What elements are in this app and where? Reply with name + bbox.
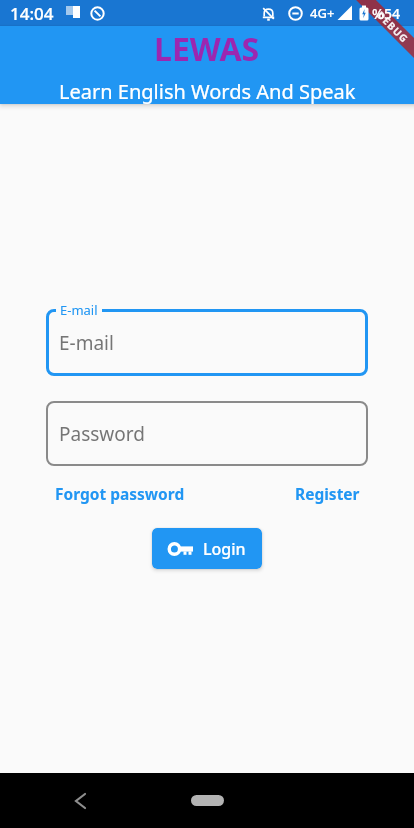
button[interactable]: Login [152, 528, 262, 569]
staticText: LEWAS [154, 27, 260, 71]
button[interactable]: Password [46, 401, 368, 466]
staticText: DEBUG [374, 8, 412, 46]
staticText: E-mail [59, 330, 114, 356]
staticText: E-mail [60, 301, 98, 319]
staticText: Learn English Words And Speak [59, 78, 356, 104]
staticText: 14:04 [10, 2, 54, 25]
button[interactable]: E-mail [46, 309, 368, 376]
button[interactable]: Forgot password [47, 475, 193, 512]
staticText: Register [295, 483, 360, 504]
button[interactable] [66, 787, 94, 815]
staticText: Login [203, 538, 246, 560]
staticText: Password [59, 421, 145, 447]
button[interactable] [191, 795, 224, 806]
button[interactable]: Register [287, 475, 368, 512]
staticText: %54 [372, 4, 400, 23]
staticText: 4G+ [310, 4, 335, 22]
staticText: Forgot password [55, 483, 185, 504]
